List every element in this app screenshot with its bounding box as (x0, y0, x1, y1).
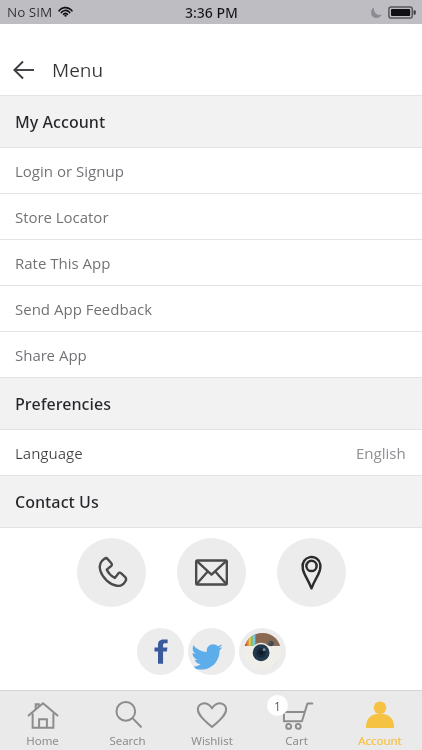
staticText: Menu (52, 57, 104, 83)
button[interactable]: Instagram (239, 628, 286, 675)
staticText: Account (358, 733, 402, 749)
staticText: Cart (285, 733, 308, 749)
button[interactable]: Back (1, 47, 47, 93)
button[interactable]: Search (85, 691, 170, 750)
button[interactable]: Language (0, 430, 422, 475)
button[interactable]: Email (177, 538, 246, 607)
button[interactable]: Share App (0, 332, 422, 377)
staticText: Send App Feedback (15, 299, 153, 319)
button[interactable]: Twitter (188, 628, 235, 675)
button[interactable]: Store Locator (0, 194, 422, 239)
staticText: English (356, 443, 406, 463)
button[interactable]: Facebook (137, 628, 184, 675)
staticText: Rate This App (15, 253, 111, 273)
button[interactable]: Account (338, 691, 422, 750)
button[interactable]: Send App Feedback (0, 286, 422, 331)
button[interactable]: Location (277, 538, 346, 607)
staticText: Contact Us (15, 491, 99, 513)
staticText: Login or Signup (15, 161, 124, 181)
staticText: Store Locator (15, 207, 109, 227)
staticText: Search (109, 733, 146, 749)
staticText: No SIM (7, 3, 53, 21)
staticText: Share App (15, 345, 87, 365)
button[interactable]: Login or Signup (0, 148, 422, 193)
button[interactable]: Call (77, 538, 146, 607)
staticText: Wishlist (191, 733, 233, 749)
staticText: 1 (274, 698, 281, 714)
staticText: Preferencies (15, 393, 112, 415)
staticText: Language (15, 443, 83, 463)
staticText: Home (26, 733, 59, 749)
button[interactable]: Wishlist (170, 691, 254, 750)
button[interactable]: Home (0, 691, 85, 750)
button[interactable]: Cart (254, 691, 338, 750)
staticText: My Account (15, 111, 106, 133)
staticText: 3:36 PM (185, 3, 238, 22)
button[interactable]: Rate This App (0, 240, 422, 285)
